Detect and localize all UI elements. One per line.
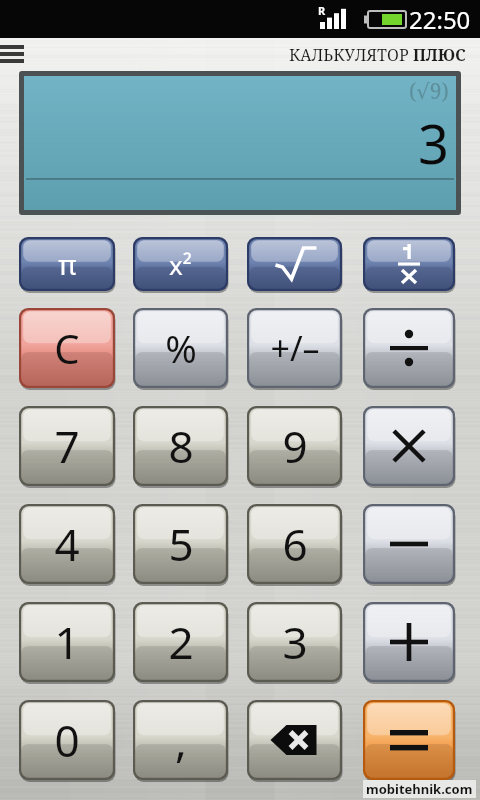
staticText: % <box>165 322 197 374</box>
button[interactable]: Backspace <box>247 700 342 780</box>
button[interactable]: C <box>19 308 115 388</box>
staticText: КАЛЬКУЛЯТОР <box>289 44 409 66</box>
button[interactable]: Multiply <box>363 406 455 486</box>
button[interactable]: Reciprocal <box>363 237 455 291</box>
button[interactable]: Equals <box>363 700 455 780</box>
staticText: 22:50 <box>409 3 471 36</box>
staticText: 3 <box>418 106 449 180</box>
button[interactable]: 4 <box>19 504 115 584</box>
staticText: 6 <box>282 514 308 574</box>
staticText: 4 <box>54 514 80 574</box>
staticText: 2 <box>168 612 194 672</box>
button[interactable]: π <box>19 237 115 291</box>
staticText: 5 <box>168 514 194 574</box>
button[interactable]: Menu <box>0 45 24 64</box>
staticText: ПЛЮС <box>413 44 466 66</box>
staticText: +/– <box>270 325 320 371</box>
button[interactable]: % <box>133 308 228 388</box>
staticText: 7 <box>54 416 80 476</box>
staticText: π <box>58 245 77 283</box>
staticText: (√9) <box>409 77 449 106</box>
staticText: C <box>54 321 80 375</box>
button[interactable]: Square root <box>247 237 342 291</box>
staticText: R <box>318 3 326 18</box>
button[interactable]: x² <box>133 237 228 291</box>
button[interactable]: 7 <box>19 406 115 486</box>
staticText: 9 <box>282 416 308 476</box>
button[interactable]: +/– <box>247 308 342 388</box>
button[interactable]: 2 <box>133 602 228 682</box>
button[interactable]: 9 <box>247 406 342 486</box>
staticText: 8 <box>168 416 194 476</box>
staticText: 3 <box>282 612 308 672</box>
button[interactable]: , <box>133 700 228 780</box>
button[interactable]: 0 <box>19 700 115 780</box>
button[interactable]: 5 <box>133 504 228 584</box>
staticText: 0 <box>54 710 80 770</box>
button[interactable]: Divide <box>363 308 455 388</box>
button[interactable]: 6 <box>247 504 342 584</box>
button[interactable]: 3 <box>247 602 342 682</box>
button[interactable]: Minus <box>363 504 455 584</box>
staticText: 1 <box>54 612 80 672</box>
staticText: x² <box>169 247 192 282</box>
staticText: , <box>175 710 187 770</box>
button[interactable]: Plus <box>363 602 455 682</box>
button[interactable]: 8 <box>133 406 228 486</box>
button[interactable]: 1 <box>19 602 115 682</box>
staticText: mobitehnik.com <box>366 780 473 798</box>
